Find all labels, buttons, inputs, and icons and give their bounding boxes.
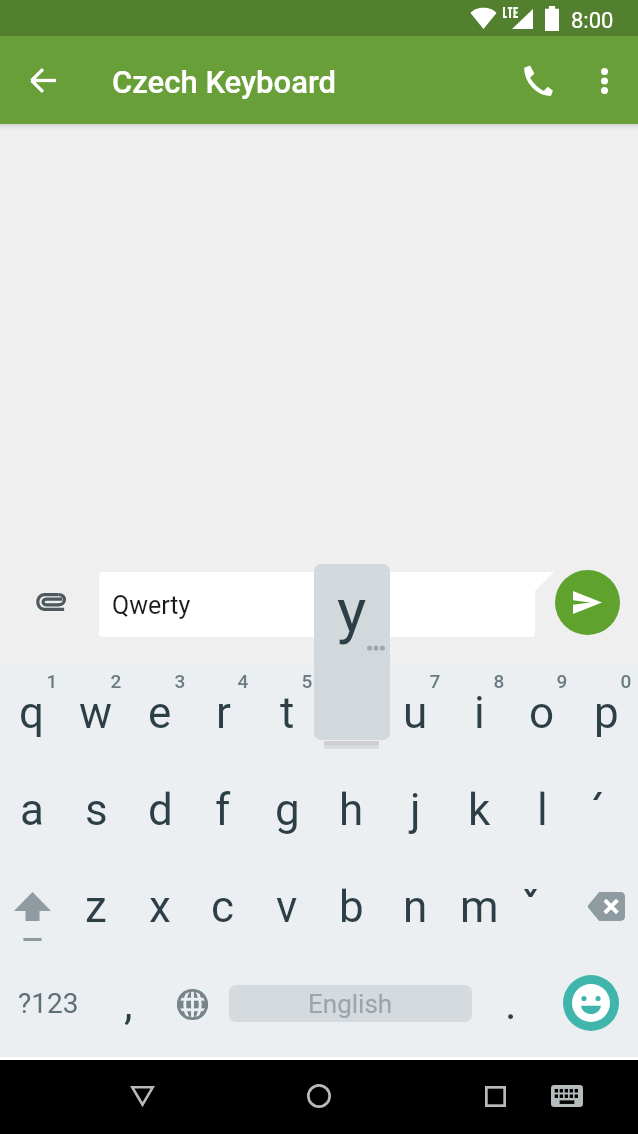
button[interactable]: , <box>96 955 160 1054</box>
button[interactable]: 0 <box>574 664 638 763</box>
staticText: u <box>403 687 428 739</box>
button[interactable]: Qwerty <box>99 572 554 637</box>
staticText: 4 <box>223 670 263 692</box>
staticText: v <box>276 881 298 933</box>
staticText: z <box>85 881 107 933</box>
staticText: r <box>216 687 231 739</box>
staticText: i <box>474 687 485 739</box>
button[interactable]: 4 <box>191 664 255 763</box>
staticText: 1 <box>32 670 72 692</box>
staticText: ?123 <box>18 987 79 1020</box>
button[interactable]: s <box>64 761 128 860</box>
button[interactable] <box>574 761 638 860</box>
button[interactable]: x <box>128 858 192 957</box>
button[interactable]: g <box>255 761 319 860</box>
button[interactable]: f <box>191 761 255 860</box>
button[interactable]: j <box>383 761 447 860</box>
button[interactable]: 9 <box>510 664 574 763</box>
staticText: p <box>594 687 619 739</box>
staticText: 8 <box>479 670 519 692</box>
button[interactable]: a <box>0 761 64 860</box>
button[interactable]: . <box>478 955 542 1054</box>
button[interactable]: Shift <box>0 858 64 957</box>
staticText: d <box>148 784 173 836</box>
button[interactable]: Back <box>110 1064 174 1128</box>
button[interactable]: Home <box>287 1064 351 1128</box>
staticText: 2 <box>96 670 136 692</box>
button[interactable]: ?123 <box>0 955 96 1054</box>
button[interactable]: Attach <box>18 570 82 634</box>
staticText: English <box>308 989 393 1019</box>
staticText: 8:00 <box>571 8 614 34</box>
button[interactable]: Recents <box>463 1064 527 1128</box>
staticText: b <box>339 881 364 933</box>
staticText: h <box>339 784 364 836</box>
staticText: x <box>149 881 171 933</box>
staticText: n <box>403 881 428 933</box>
button[interactable]: 3 <box>128 664 192 763</box>
staticText: c <box>211 881 235 933</box>
staticText: q <box>19 687 45 739</box>
button[interactable]: Change language <box>160 955 224 1054</box>
button[interactable]: z <box>64 858 128 957</box>
staticText: e <box>148 687 172 739</box>
button[interactable]: 8 <box>447 664 511 763</box>
button[interactable]: 5 <box>255 664 319 763</box>
staticText: . <box>505 978 517 1030</box>
staticText: a <box>20 784 44 836</box>
staticText: Czech Keyboard <box>112 64 337 100</box>
button[interactable]: Send <box>555 570 620 635</box>
button[interactable]: n <box>383 858 447 957</box>
staticText: 6 <box>351 670 391 692</box>
button[interactable]: 1 <box>0 664 64 763</box>
staticText: f <box>215 784 231 836</box>
button[interactable]: m <box>447 858 511 957</box>
staticText: m <box>460 881 499 933</box>
button[interactable]: b <box>319 858 383 957</box>
staticText: Qwerty <box>112 591 191 620</box>
button[interactable]: d <box>128 761 192 860</box>
staticText: 9 <box>542 670 582 692</box>
staticText: g <box>275 784 300 836</box>
staticText: s <box>85 784 108 836</box>
button[interactable]: Call <box>505 47 569 111</box>
button[interactable]: v <box>255 858 319 957</box>
button[interactable]: l <box>510 761 574 860</box>
button[interactable]: h <box>319 761 383 860</box>
button[interactable]: 7 <box>383 664 447 763</box>
button[interactable]: Emoji <box>563 975 619 1031</box>
button[interactable]: k <box>447 761 511 860</box>
staticText: 7 <box>415 670 455 692</box>
button[interactable]: Back <box>11 48 75 112</box>
staticText: 3 <box>160 670 200 692</box>
button[interactable]: Space <box>229 985 472 1022</box>
staticText: 0 <box>606 670 638 692</box>
staticText: 5 <box>287 670 327 692</box>
staticText: k <box>468 784 491 836</box>
staticText: j <box>410 784 421 836</box>
button[interactable] <box>510 858 574 957</box>
button[interactable]: 2 <box>64 664 128 763</box>
button[interactable]: 6 <box>319 664 383 763</box>
button[interactable]: Backspace <box>574 858 638 957</box>
staticText: w <box>79 687 113 739</box>
button[interactable]: c <box>191 858 255 957</box>
staticText: t <box>280 687 295 739</box>
staticText: o <box>529 687 555 739</box>
button[interactable]: More options <box>580 57 628 105</box>
staticText: , <box>124 978 133 1030</box>
button[interactable]: Switch keyboard <box>535 1064 599 1128</box>
staticText: l <box>537 784 548 836</box>
staticText: y <box>337 574 367 647</box>
